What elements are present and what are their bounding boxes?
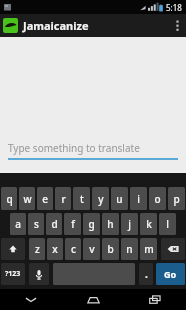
button[interactable]: k	[140, 213, 157, 235]
staticText: .	[145, 267, 148, 281]
staticText: g	[88, 217, 95, 231]
staticText: 5:18	[166, 2, 182, 13]
staticText: l	[166, 217, 169, 231]
staticText: y	[98, 192, 104, 206]
button[interactable]: Home	[62, 289, 124, 310]
button[interactable]: n	[121, 238, 138, 260]
staticText: n	[126, 242, 133, 256]
staticText: x	[52, 242, 58, 256]
button[interactable]: App icon	[3, 18, 18, 33]
button[interactable]: j	[121, 213, 138, 235]
button[interactable]: x	[47, 238, 63, 260]
button[interactable]: m	[140, 238, 157, 260]
button[interactable]: p	[168, 187, 185, 210]
staticText: s	[34, 217, 39, 231]
staticText: t	[80, 192, 84, 206]
staticText: m	[144, 242, 154, 256]
staticText: d	[51, 217, 58, 231]
staticText: v	[89, 242, 95, 256]
button[interactable]: f	[64, 213, 81, 235]
button[interactable]: o	[149, 187, 166, 210]
button[interactable]: g	[83, 213, 100, 235]
staticText: a	[15, 217, 21, 231]
staticText: q	[6, 192, 13, 206]
staticText: k	[146, 217, 152, 231]
staticText: Type something to translate	[8, 141, 140, 155]
button[interactable]: v	[83, 238, 100, 260]
button[interactable]: More options	[168, 14, 186, 37]
button[interactable]: Type something to translate	[8, 141, 178, 160]
staticText: Jamaicanize	[23, 18, 89, 33]
button[interactable]: a	[10, 213, 26, 235]
staticText: Go	[164, 268, 177, 280]
button[interactable]: Recent apps	[124, 289, 186, 310]
button[interactable]: Shift	[1, 238, 25, 260]
button[interactable]: z	[29, 238, 45, 260]
button[interactable]: Hide keyboard	[0, 289, 62, 310]
button[interactable]: q	[1, 187, 17, 210]
button[interactable]: l	[159, 213, 176, 235]
staticText: p	[173, 192, 180, 206]
staticText: f	[71, 217, 75, 231]
button[interactable]: ?123	[1, 263, 25, 285]
staticText: h	[107, 217, 114, 231]
button[interactable]: y	[92, 187, 109, 210]
staticText: r	[61, 192, 66, 206]
button[interactable]: h	[102, 213, 119, 235]
button[interactable]: t	[73, 187, 90, 210]
button[interactable]: b	[102, 238, 119, 260]
staticText: i	[137, 192, 140, 206]
button[interactable]: Backspace	[161, 238, 185, 260]
staticText: e	[42, 192, 48, 206]
staticText: o	[154, 192, 161, 206]
staticText: w	[23, 192, 32, 206]
button[interactable]: c	[65, 238, 81, 260]
button[interactable]: r	[55, 187, 71, 210]
button[interactable]: d	[46, 213, 62, 235]
staticText: z	[35, 242, 40, 256]
button[interactable]: Go	[156, 263, 185, 285]
button[interactable]: Voice input	[29, 263, 49, 285]
staticText: c	[71, 242, 76, 256]
staticText: u	[116, 192, 123, 206]
button[interactable]: u	[111, 187, 128, 210]
staticText: ?123	[5, 269, 21, 279]
staticText: b	[107, 242, 114, 256]
button[interactable]: w	[19, 187, 35, 210]
button[interactable]: s	[28, 213, 44, 235]
staticText: j	[128, 217, 131, 231]
button[interactable]: e	[37, 187, 53, 210]
button[interactable]: .	[139, 263, 153, 285]
button[interactable]: i	[130, 187, 147, 210]
